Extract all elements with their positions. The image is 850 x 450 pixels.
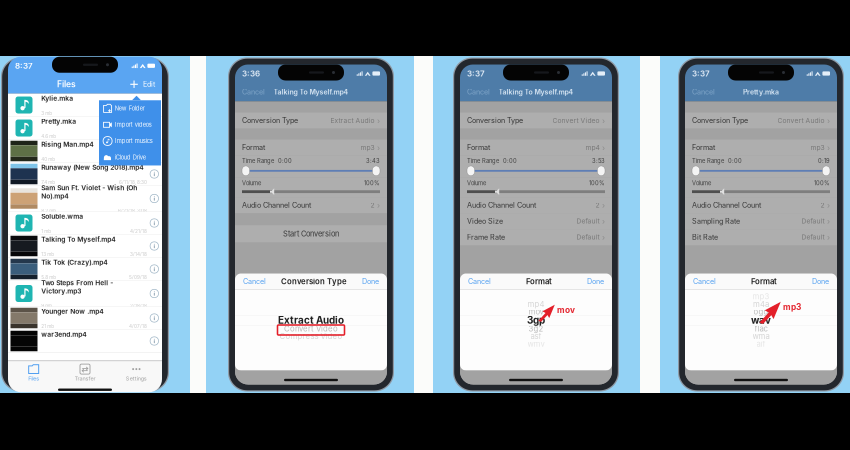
button[interactable]: Frame Rate [460, 229, 612, 245]
button[interactable]: Cancel [693, 274, 716, 289]
staticText: 3:36 [242, 69, 260, 78]
button[interactable]: iCloud Drive [99, 149, 161, 165]
staticText: iCloud Drive [115, 154, 146, 161]
staticText: 2 [370, 201, 374, 209]
staticText: Cancel [692, 88, 715, 96]
staticText: Audio Channel Count [467, 201, 536, 209]
button[interactable]: Conversion Type [685, 112, 837, 128]
button[interactable]: Runaway (New Song 2018).mp4 [8, 163, 162, 186]
button[interactable]: Conversion Type [460, 112, 612, 128]
button[interactable]: Pretty.mka [8, 117, 162, 140]
staticText: Conversion Type [242, 116, 298, 125]
button[interactable]: Import videos [99, 116, 161, 133]
button[interactable]: Cancel [468, 274, 491, 289]
staticText: Time Range 0:00 [242, 157, 292, 164]
staticText: Audio Channel Count [692, 201, 761, 209]
button[interactable]: Import musics [99, 133, 161, 149]
button[interactable]: Audio Channel Count [685, 197, 837, 213]
staticText: › [602, 200, 605, 210]
staticText: › [827, 216, 830, 226]
staticText: 3g2 [528, 324, 543, 333]
staticText: 3gp [527, 314, 545, 326]
staticText: Soluble.wma [41, 212, 83, 220]
staticText: Rising Man.mp4 [41, 140, 93, 148]
staticText: mp3 [360, 143, 374, 152]
button[interactable]: New Folder [99, 100, 161, 116]
staticText: Cancel [693, 277, 716, 286]
staticText: 2 [820, 201, 824, 209]
button[interactable]: Sam Sun Ft. Violet - Wish (Oh No).mp4 [8, 186, 162, 212]
staticText: Time Range 0:00 [467, 157, 517, 164]
button[interactable]: Audio Channel Count [235, 197, 387, 213]
staticText: 100% [364, 180, 380, 187]
button[interactable]: Video Size [460, 213, 612, 229]
staticText: Default [576, 233, 599, 241]
button[interactable]: Conversion Type [235, 112, 387, 128]
button[interactable]: Edit [143, 76, 162, 93]
button[interactable]: Transfer [59, 361, 111, 382]
staticText: mov [557, 305, 575, 315]
button[interactable]: Soluble.wma [8, 212, 162, 235]
button[interactable]: Cancel [242, 84, 265, 100]
button[interactable]: Settings [111, 361, 162, 382]
button[interactable]: Kylie.mka [8, 94, 162, 117]
button[interactable]: Sampling Rate [685, 213, 837, 229]
staticText: 3:43 [366, 157, 380, 164]
button[interactable]: Tik Tok (Crazy).mp4 [8, 258, 162, 281]
button[interactable]: Cancel [467, 84, 490, 100]
staticText: mov [528, 307, 543, 316]
staticText: Start Conversion [283, 229, 339, 238]
staticText: Two Steps From Hell - Victory.mp3 [41, 279, 113, 295]
staticText: Import musics [115, 137, 153, 144]
staticText: 0:19 [818, 157, 830, 164]
staticText: › [377, 200, 380, 210]
staticText: Talking To Myself.mp4 [41, 235, 115, 243]
button[interactable]: Format [460, 139, 612, 155]
button[interactable]: Rising Man.mp4 [8, 140, 162, 163]
button[interactable]: Start Conversion [235, 225, 387, 242]
staticText: Format [526, 277, 552, 286]
staticText: 4/07/18 [129, 323, 147, 329]
button[interactable]: Bit Rate [685, 229, 837, 245]
staticText: 6/21/18, 3:08 [118, 208, 147, 214]
button[interactable]: Two Steps From Hell - Victory.mp3 [8, 281, 162, 307]
staticText: › [377, 116, 380, 125]
button[interactable]: Younger Now .mp4 [8, 307, 162, 330]
button[interactable]: Done [362, 274, 379, 289]
staticText: wmv [527, 339, 544, 349]
button[interactable]: Done [587, 274, 604, 289]
staticText: Format [692, 143, 715, 152]
staticText: 5/09/18 [129, 274, 147, 280]
staticText: 5.8 mb [41, 274, 56, 280]
staticText: 100% [814, 180, 830, 187]
button[interactable]: war3end.mp4 [8, 330, 162, 353]
button[interactable]: Format [235, 139, 387, 155]
staticText: 3:37 [692, 69, 710, 78]
staticText: Cancel [467, 88, 490, 96]
button[interactable]: Done [812, 274, 829, 289]
staticText: Compress Video [279, 332, 342, 341]
button[interactable]: Talking To Myself.mp4 [8, 235, 162, 258]
staticText: 21 mb [41, 323, 54, 329]
staticText: Import videos [115, 121, 152, 128]
staticText: Video Size [467, 217, 503, 225]
button[interactable]: Add [125, 76, 143, 92]
staticText: 2 [595, 201, 599, 209]
staticText: Conversion Type [281, 277, 347, 286]
staticText: Cancel [242, 88, 265, 96]
staticText: Volume [467, 180, 486, 187]
staticText: › [377, 143, 380, 152]
staticText: Default [576, 217, 599, 225]
staticText: 40 mb [41, 156, 55, 162]
staticText: 4.6 mb [41, 133, 56, 139]
staticText: › [827, 232, 830, 242]
button[interactable]: Files [8, 361, 59, 382]
staticText: › [827, 143, 830, 152]
staticText: 1 mb [41, 228, 51, 234]
button[interactable]: Cancel [243, 274, 266, 289]
button[interactable]: Audio Channel Count [460, 197, 612, 213]
button[interactable]: Cancel [692, 84, 715, 100]
button[interactable]: Format [685, 139, 837, 155]
staticText: › [602, 143, 605, 152]
